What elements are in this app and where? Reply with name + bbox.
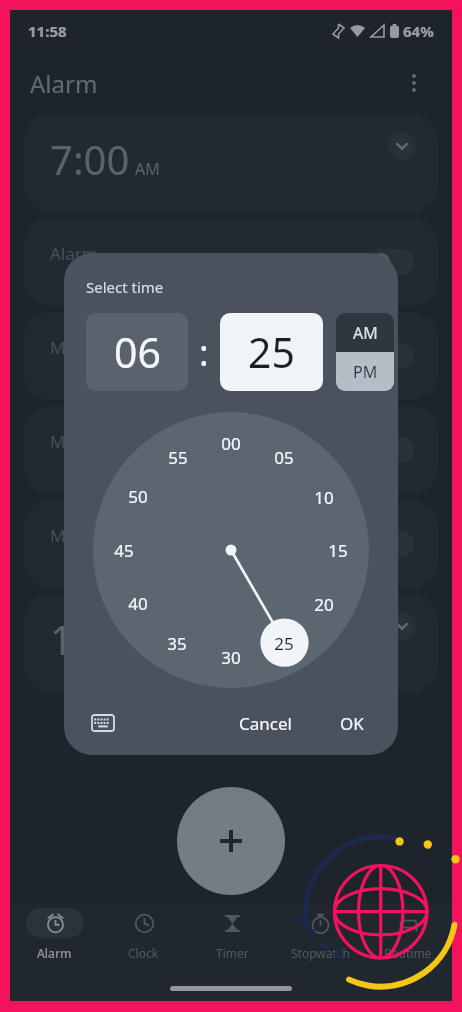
- button[interactable]: Alarm: [24, 218, 438, 306]
- button[interactable]: Toggle alarm: [368, 249, 414, 275]
- button[interactable]: Cancel: [227, 706, 304, 741]
- button[interactable]: Mon: [24, 312, 438, 400]
- button[interactable]: Mon: [24, 406, 438, 494]
- button[interactable]: Expand: [388, 132, 416, 160]
- staticText: 45: [114, 539, 134, 562]
- staticText: 25: [274, 632, 294, 655]
- staticText: Timer: [216, 945, 249, 961]
- button[interactable]: OK: [328, 706, 376, 741]
- staticText: Clock: [128, 945, 159, 961]
- button[interactable]: 25: [220, 313, 323, 391]
- staticText: 40: [128, 592, 148, 615]
- button[interactable]: Toggle alarm: [368, 531, 414, 557]
- button[interactable]: More options: [396, 65, 432, 101]
- button[interactable]: Clock: [99, 903, 188, 975]
- staticText: 05: [274, 446, 294, 469]
- button[interactable]: PM: [336, 352, 394, 391]
- staticText: Mon: [50, 430, 87, 453]
- staticText: Stopwatch: [291, 945, 350, 961]
- button[interactable]: Stopwatch: [276, 903, 364, 975]
- staticText: 12:30: [50, 612, 153, 666]
- staticText: Cancel: [239, 712, 292, 735]
- staticText: PM: [353, 361, 378, 383]
- staticText: Mon: [50, 524, 87, 547]
- button[interactable]: Add alarm: [177, 787, 285, 895]
- staticText: Alarm: [37, 945, 72, 961]
- staticText: 55: [168, 446, 188, 469]
- staticText: AM: [135, 158, 160, 180]
- staticText: 20: [314, 593, 334, 616]
- button[interactable]: Alarm: [10, 903, 99, 975]
- staticText: PM: [158, 638, 183, 660]
- button[interactable]: Expand: [388, 612, 416, 640]
- button[interactable]: Toggle alarm: [368, 437, 414, 463]
- staticText: Alarm: [50, 242, 98, 265]
- button[interactable]: 12:30: [24, 594, 438, 692]
- staticText: Alarm: [30, 67, 98, 100]
- button[interactable]: Toggle alarm: [368, 343, 414, 369]
- staticText: Bedtime: [384, 945, 432, 961]
- staticText: AM: [353, 322, 378, 344]
- staticText: 00: [221, 432, 241, 455]
- button[interactable]: AM: [336, 313, 394, 352]
- button[interactable]: Bedtime: [364, 903, 452, 975]
- button[interactable]: Mon: [24, 500, 438, 588]
- staticText: Mon: [50, 336, 87, 359]
- staticText: 35: [167, 632, 187, 655]
- staticText: 10: [314, 486, 334, 509]
- staticText: OK: [340, 712, 364, 735]
- staticText: 30: [221, 646, 241, 669]
- button[interactable]: Timer: [188, 903, 276, 975]
- button[interactable]: Switch to text input: [86, 706, 120, 740]
- staticText: 06: [114, 324, 161, 380]
- staticText: 11:58: [28, 21, 67, 41]
- button[interactable]: 06: [86, 313, 188, 391]
- staticText: 64%: [403, 21, 434, 41]
- staticText: Select time: [86, 277, 164, 297]
- staticText: 50: [128, 485, 148, 508]
- staticText: 7:00: [50, 132, 130, 186]
- staticText: :: [199, 328, 209, 377]
- staticText: 25: [248, 324, 295, 380]
- button[interactable]: 7:00: [24, 114, 438, 212]
- staticText: 15: [328, 539, 348, 562]
